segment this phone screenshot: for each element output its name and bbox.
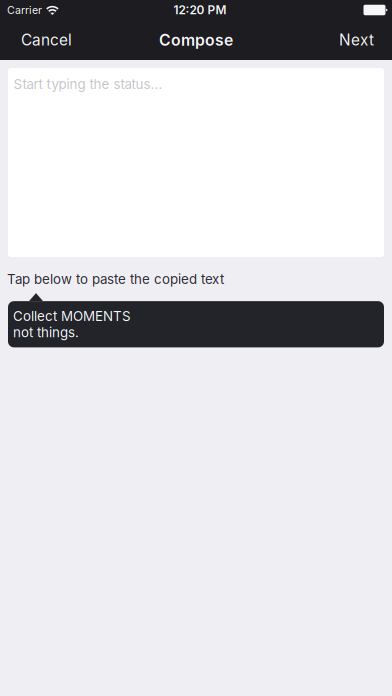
staticText: Cancel (21, 31, 72, 49)
staticText: Compose (159, 30, 233, 49)
staticText: Collect MOMENTS not things. (13, 308, 131, 340)
button[interactable]: Cancel (0, 20, 84, 60)
button[interactable]: Collect MOMENTS not things. (8, 301, 384, 347)
staticText: Carrier (7, 3, 42, 16)
staticText: 12:20 PM (173, 3, 226, 17)
staticText: Tap below to paste the copied text (7, 271, 224, 287)
button[interactable]: Next (327, 20, 392, 60)
staticText: Start typing the status... (13, 76, 162, 92)
staticText: Next (339, 31, 374, 49)
